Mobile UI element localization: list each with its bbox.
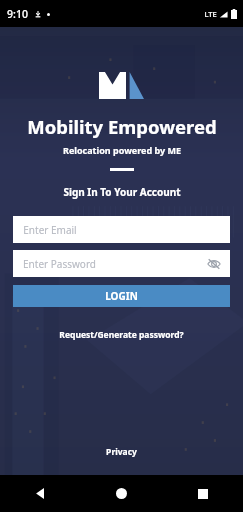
staticText: Mobility Empowered [27,114,217,139]
staticText: 9:10 [7,7,28,21]
button[interactable]: Privacy [98,443,145,461]
button[interactable]: Request/Generate password? [53,327,190,343]
button[interactable]: Recents [162,475,243,512]
button[interactable]: LOGIN [13,285,230,307]
button[interactable]: Home [81,475,162,512]
staticText: Enter Email [23,223,77,237]
button[interactable]: Enter Email [13,216,230,243]
button[interactable]: Enter Password [13,250,230,277]
staticText: Sign In To Your Account [63,185,181,199]
staticText: Privacy [106,446,137,458]
button[interactable]: Show password [206,256,222,272]
button[interactable]: Back [0,475,81,512]
staticText: Relocation powered by ME [63,144,181,156]
staticText: Enter Password [23,257,96,271]
staticText: LOGIN [105,289,138,303]
staticText: LTE [204,9,217,19]
staticText: Request/Generate password? [59,329,184,341]
